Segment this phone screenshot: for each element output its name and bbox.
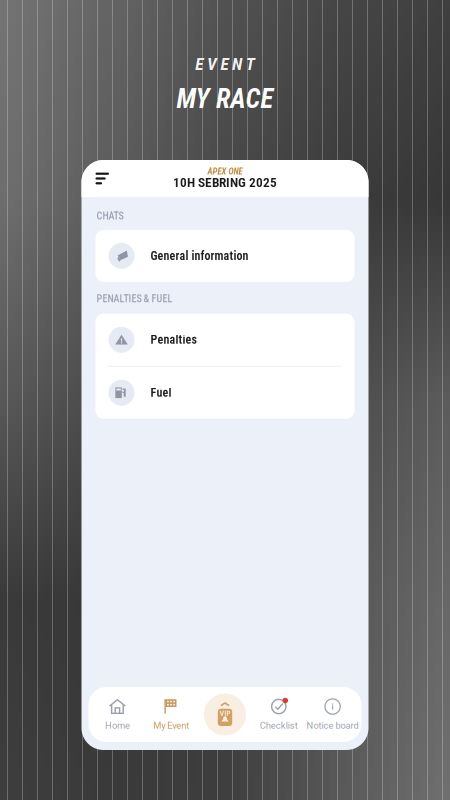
button[interactable]: General information — [95, 230, 354, 282]
staticText: Checklist — [260, 720, 298, 731]
button[interactable]: My Event — [144, 692, 198, 736]
staticText: CHATS — [96, 210, 123, 222]
button[interactable]: Penalties — [95, 314, 354, 366]
staticText: Penalties — [150, 333, 196, 347]
button[interactable]: Home — [90, 692, 144, 736]
staticText: Home — [105, 720, 130, 731]
staticText: MY RACE — [176, 83, 274, 115]
staticText: My Event — [153, 720, 189, 731]
button[interactable]: Fuel — [95, 367, 354, 419]
staticText: VIP — [219, 710, 230, 717]
button[interactable]: VIP pass — [198, 692, 252, 736]
button[interactable]: Checklist — [252, 692, 306, 736]
staticText: EVENT — [195, 54, 255, 74]
staticText: Notice board — [307, 720, 359, 731]
staticText: General information — [150, 249, 248, 263]
button[interactable]: Menu — [88, 165, 116, 191]
staticText: PENALTIES & FUEL — [96, 293, 172, 305]
staticText: Fuel — [150, 386, 171, 400]
staticText: 10H SEBRING 2025 — [173, 175, 277, 190]
staticText: APEX ONE — [207, 166, 242, 177]
button[interactable]: Notice board — [306, 692, 359, 736]
